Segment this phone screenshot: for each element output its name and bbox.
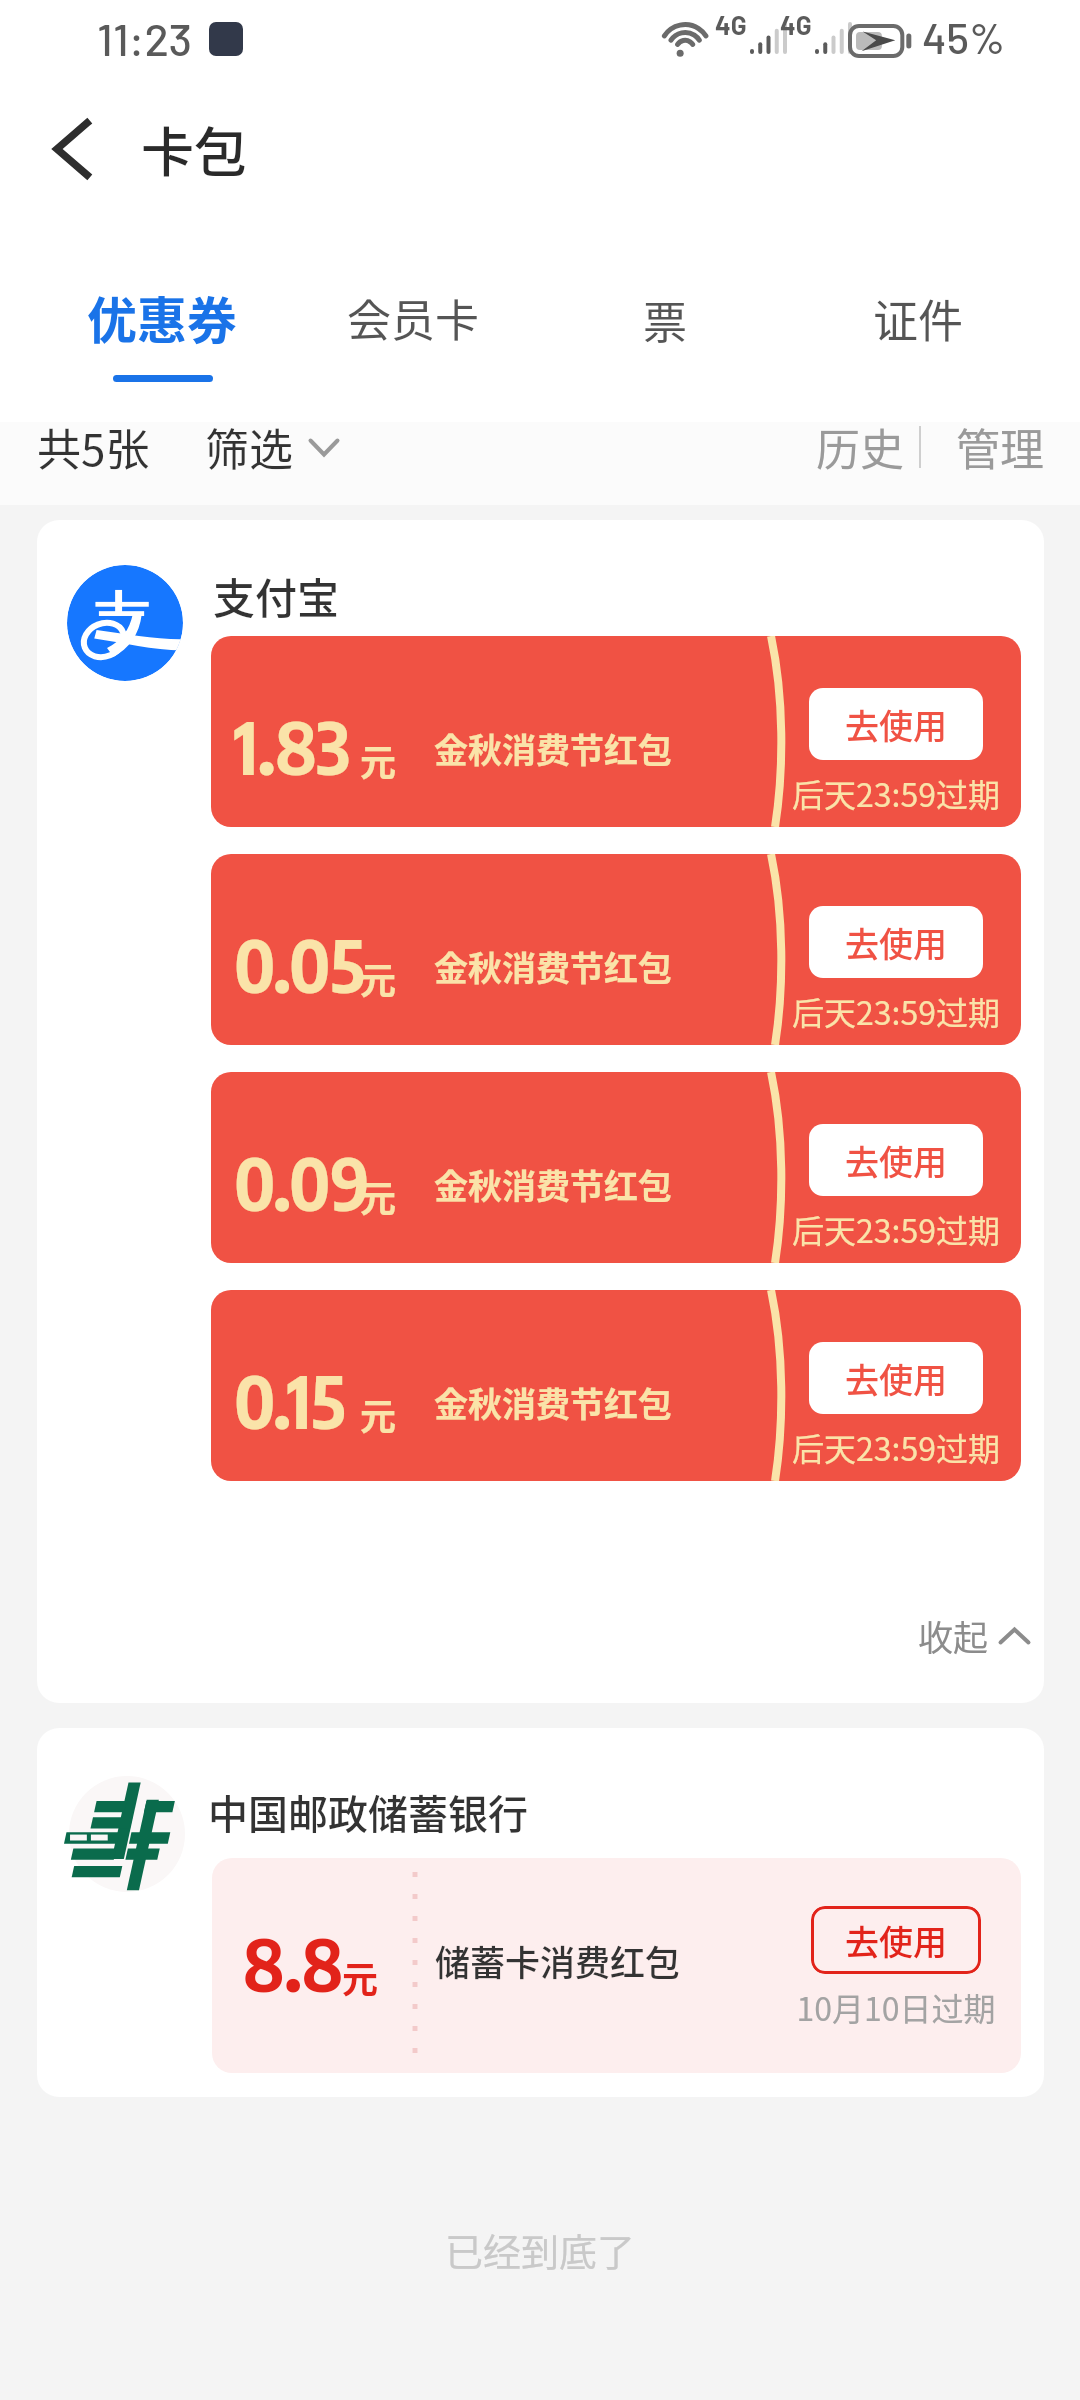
staticText: 筛选 [205,415,293,479]
staticText: 共5张 [37,415,150,479]
staticText: 金秋消费节红包 [434,1378,672,1427]
button[interactable]: 8.8 [212,1858,1021,2073]
staticText: 优惠券 [87,281,237,353]
staticText: 后天23:59过期 [774,1206,1018,1252]
staticText: 45% [922,11,1006,63]
staticText: 元 [360,1388,397,1440]
button[interactable]: 1.83 [211,636,1021,827]
staticText: 去使用 [845,1916,947,1965]
button[interactable]: 票 [545,260,785,380]
staticText: 金秋消费节红包 [434,942,672,991]
button[interactable]: 证件 [798,260,1038,380]
staticText: 后天23:59过期 [774,1424,1018,1470]
staticText: 金秋消费节红包 [434,1160,672,1209]
button[interactable]: 返回 [29,106,115,192]
staticText: 0.15 [234,1356,346,1445]
staticText: 元 [360,1170,397,1222]
staticText: 已经到底了 [0,2222,1080,2277]
staticText: 金秋消费节红包 [434,724,672,773]
staticText: 中国邮政储蓄银行 [208,1783,528,1841]
staticText: 支付宝 [213,565,340,626]
button[interactable]: 历史 [816,415,904,479]
button[interactable]: 0.15 [211,1290,1021,1481]
staticText: 0.05 [234,920,365,1009]
staticText: 后天23:59过期 [774,770,1018,816]
staticText: 储蓄卡消费红包 [435,1935,681,1986]
staticText: 证件 [873,286,964,351]
staticText: 10月10日过期 [774,1984,1018,2030]
button[interactable]: 筛选 [205,415,339,479]
staticText: 11:23 [97,11,193,65]
button[interactable]: 去使用 [809,906,983,978]
button[interactable]: 收起 [918,1610,1030,1661]
staticText: 票 [643,288,687,352]
button[interactable]: 0.09 [211,1072,1021,1263]
staticText: 元 [342,1951,379,2003]
button[interactable]: 去使用 [809,688,983,760]
staticText: 去使用 [845,1136,947,1185]
button[interactable]: 优惠券 [42,260,282,380]
staticText: 元 [360,952,397,1004]
button[interactable]: 去使用 [811,1906,981,1974]
staticText: 去使用 [845,1354,947,1403]
staticText: 4G [780,9,812,40]
staticText: 4G [715,9,747,40]
staticText: 会员卡 [347,286,479,350]
staticText: 1.83 [234,702,351,791]
button[interactable]: 去使用 [809,1124,983,1196]
staticText: 去使用 [845,918,947,967]
staticText: 去使用 [845,700,947,749]
button[interactable]: 去使用 [809,1342,983,1414]
staticText: 元 [360,734,397,786]
button[interactable]: 管理 [956,415,1044,479]
staticText: 0.09 [234,1138,370,1227]
button[interactable]: 会员卡 [293,260,533,380]
staticText: 收起 [918,1610,989,1661]
staticText: 卡包 [141,111,247,188]
staticText: 后天23:59过期 [774,988,1018,1034]
button[interactable]: 0.05 [211,854,1021,1045]
staticText: 8.8 [243,1919,344,2008]
